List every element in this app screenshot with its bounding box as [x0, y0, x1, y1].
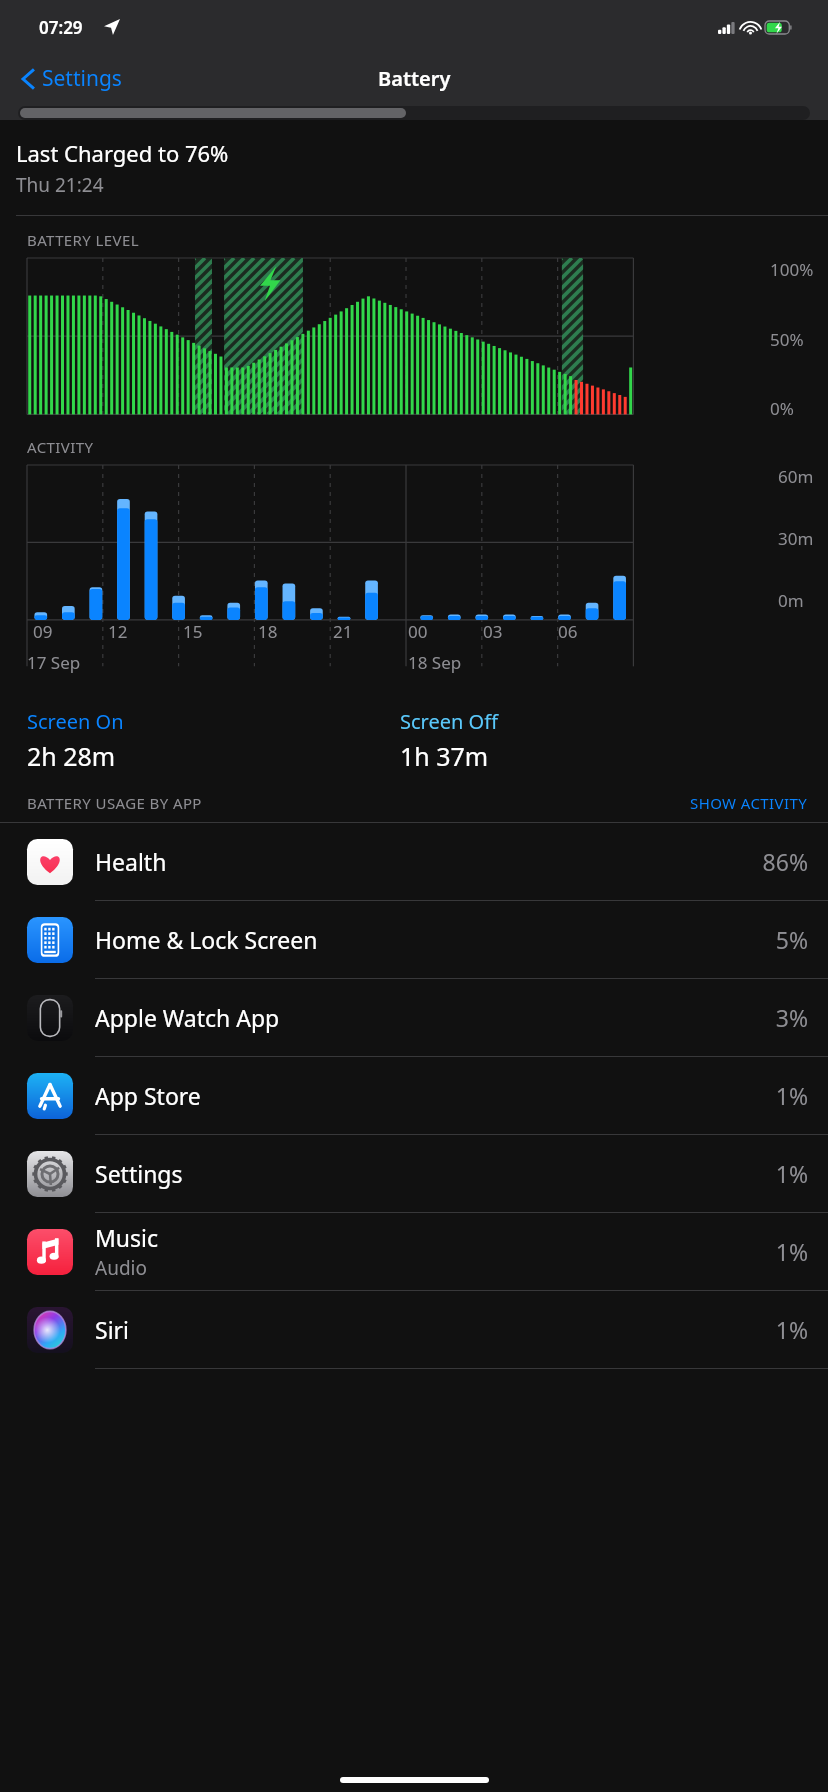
staticText: Home & Lock Screen [95, 924, 318, 955]
staticText: Music [95, 1222, 159, 1253]
staticText: 60m [778, 465, 814, 488]
button[interactable]: App Store [0, 1057, 828, 1135]
staticText: 0m [778, 589, 804, 612]
staticText: 1% [775, 1080, 808, 1111]
button[interactable]: Health [0, 823, 828, 901]
staticText: ACTIVITY [27, 437, 94, 457]
staticText: SHOW ACTIVITY [690, 793, 808, 813]
staticText: Settings [95, 1158, 183, 1189]
staticText: Settings [42, 64, 122, 93]
staticText: Screen Off [400, 708, 498, 735]
staticText: Thu 21:24 [16, 172, 104, 198]
staticText: 18 Sep [408, 651, 462, 674]
staticText: 21 [333, 620, 353, 643]
button[interactable]: Home & Lock Screen [0, 901, 828, 979]
staticText: 50% [770, 328, 804, 351]
staticText: 17 Sep [27, 651, 81, 674]
staticText: 100% [770, 258, 814, 281]
staticText: Audio [95, 1255, 147, 1281]
staticText: 09 [33, 620, 53, 643]
staticText: 12 [108, 620, 128, 643]
button[interactable]: Settings [16, 58, 128, 99]
staticText: 0% [770, 397, 794, 420]
staticText: 5% [775, 924, 808, 955]
staticText: BATTERY LEVEL [27, 230, 139, 250]
staticText: Last Charged to 76% [16, 138, 229, 168]
staticText: 15 [183, 620, 203, 643]
staticText: 18 [258, 620, 278, 643]
staticText: 03 [483, 620, 503, 643]
staticText: 2h 28m [27, 739, 116, 773]
staticText: 06 [558, 620, 578, 643]
button[interactable]: Apple Watch App [0, 979, 828, 1057]
staticText: Health [95, 846, 167, 877]
staticText: 1h 37m [400, 739, 489, 773]
staticText: 1% [775, 1236, 808, 1267]
staticText: Apple Watch App [95, 1002, 280, 1033]
staticText: 30m [778, 527, 814, 550]
staticText: BATTERY USAGE BY APP [27, 793, 202, 813]
button[interactable]: Siri [0, 1291, 828, 1369]
staticText: 1% [775, 1314, 808, 1345]
staticText: 3% [775, 1002, 808, 1033]
button[interactable]: SHOW ACTIVITY [690, 793, 808, 813]
staticText: App Store [95, 1080, 201, 1111]
staticText: Siri [95, 1314, 129, 1345]
staticText: 1% [775, 1158, 808, 1189]
staticText: 00 [408, 620, 428, 643]
staticText: Battery [378, 65, 451, 92]
staticText: Screen On [27, 708, 124, 735]
staticText: 07:29 [39, 16, 83, 39]
button[interactable]: Settings [0, 1135, 828, 1213]
staticText: 86% [762, 846, 808, 877]
button[interactable]: Music [0, 1213, 828, 1291]
